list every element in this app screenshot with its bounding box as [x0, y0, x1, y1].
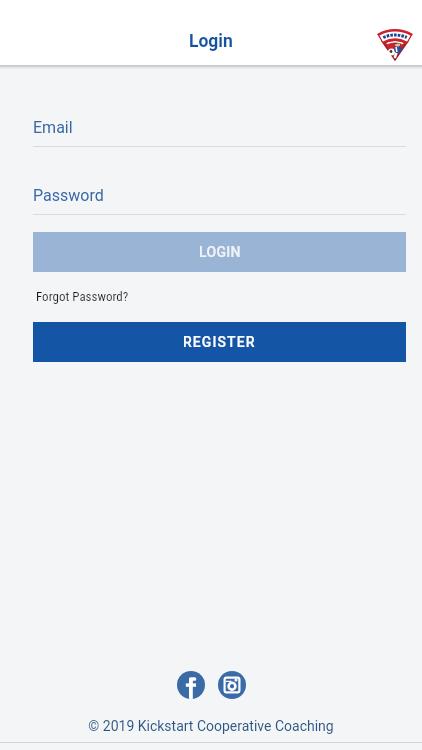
button[interactable]: Forgot Password?: [36, 289, 129, 304]
button[interactable]: REGISTER: [33, 322, 406, 362]
staticText: LOGIN: [199, 244, 241, 260]
staticText: Password: [33, 186, 104, 205]
button[interactable]: [177, 671, 205, 699]
staticText: Login: [189, 31, 233, 52]
button[interactable]: [218, 671, 246, 699]
staticText: REGISTER: [183, 334, 256, 350]
staticText: Email: [33, 118, 73, 137]
button[interactable]: LOGIN: [33, 232, 406, 272]
staticText: © 2019 Kickstart Cooperative Coaching: [88, 718, 334, 734]
